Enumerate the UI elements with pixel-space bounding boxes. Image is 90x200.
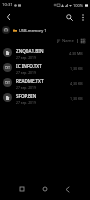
- button[interactable]: Home: [38, 182, 52, 196]
- button[interactable]: SFOP.BIN: [0, 90, 90, 105]
- staticText: 10:31: [2, 2, 13, 8]
- staticText: 4,30 KB: [70, 81, 83, 86]
- staticText: Name: [62, 38, 74, 44]
- button[interactable]: Back: [1, 10, 15, 24]
- button[interactable]: More options: [76, 10, 90, 24]
- staticText: 1,30 KB: [70, 66, 83, 71]
- staticText: 27 sep. 2019: [16, 85, 36, 90]
- staticText: SFOP.BIN: [16, 93, 37, 99]
- button[interactable]: View mode: [79, 37, 87, 45]
- button[interactable]: Storage: [2, 26, 10, 34]
- staticText: 27 sep. 2019: [16, 70, 36, 75]
- staticText: TXT: [5, 66, 10, 70]
- button[interactable]: Search: [62, 10, 76, 24]
- staticText: 1,30 KB: [70, 96, 83, 101]
- staticText: README.TXT: [16, 78, 44, 84]
- staticText: 27 sep. 2019: [16, 55, 36, 60]
- button[interactable]: TXT: [0, 60, 90, 75]
- button[interactable]: Back: [60, 182, 74, 196]
- button[interactable]: ZNQ0A1.BIN: [0, 45, 90, 60]
- staticText: IC INFO.TXT: [16, 63, 42, 69]
- staticText: TXT: [5, 81, 10, 85]
- staticText: ZNQ0A1.BIN: [16, 48, 44, 54]
- button[interactable]: TXT: [0, 75, 90, 90]
- button[interactable]: Recents: [15, 182, 29, 196]
- staticText: 4.30 MB: [69, 51, 83, 56]
- staticText: USB-memory 1: [19, 28, 47, 33]
- staticText: 100%: [73, 3, 84, 8]
- button[interactable]: Name: [56, 38, 75, 44]
- staticText: 27 sep. 2019: [16, 100, 36, 105]
